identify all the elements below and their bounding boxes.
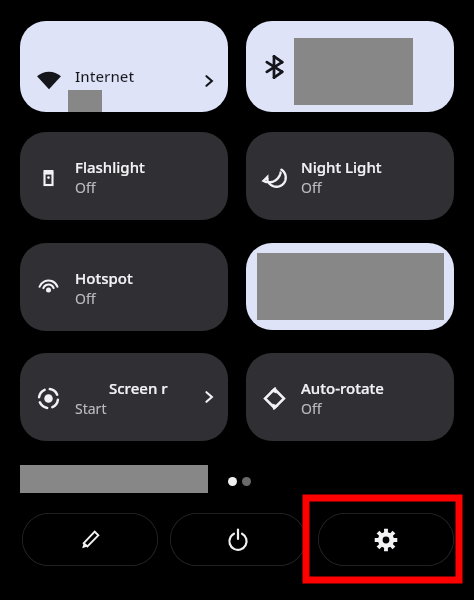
staticText: Screen r: [109, 378, 168, 398]
staticText: Off: [301, 178, 322, 197]
staticText: Start: [75, 399, 107, 418]
staticText: Hotspot: [75, 268, 133, 288]
button[interactable]: Night Light: [246, 132, 454, 220]
other: Screen record options: [201, 389, 217, 405]
button[interactable]: Hotspot: [20, 243, 228, 331]
button[interactable]: Edit: [22, 513, 158, 566]
staticText: Night Light: [301, 157, 382, 177]
button[interactable]: Power: [170, 513, 306, 566]
button[interactable]: Auto-rotate: [246, 353, 454, 441]
staticText: Auto-rotate: [301, 378, 384, 398]
button[interactable]: Flashlight: [20, 132, 228, 220]
other: Open Internet settings: [201, 73, 217, 89]
button[interactable]: Internet: [20, 21, 228, 112]
button[interactable]: [246, 243, 454, 330]
staticText: Off: [75, 289, 96, 308]
button[interactable]: [246, 21, 454, 112]
button[interactable]: Settings: [318, 513, 454, 566]
button[interactable]: Screen r: [20, 353, 228, 441]
staticText: Internet: [75, 66, 135, 86]
staticText: Off: [75, 178, 96, 197]
staticText: Off: [301, 399, 322, 418]
staticText: Flashlight: [75, 157, 145, 177]
